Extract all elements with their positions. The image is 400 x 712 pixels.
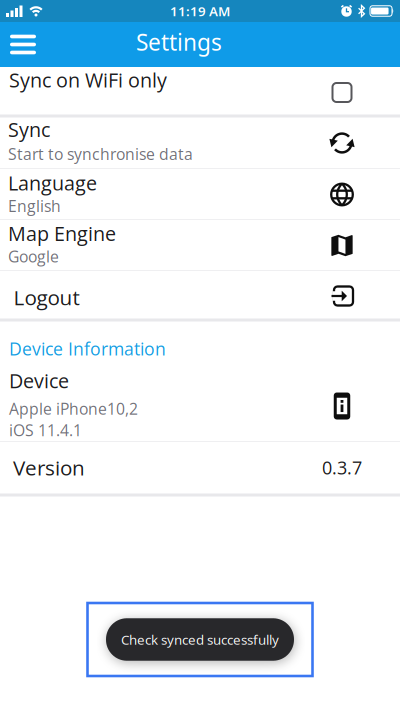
- staticText: Sync on WiFi only: [9, 66, 167, 93]
- button[interactable]: Language: [0, 169, 400, 219]
- staticText: Device Information: [9, 337, 166, 361]
- button[interactable]: Logout: [0, 271, 400, 318]
- staticText: Settings: [136, 27, 222, 57]
- staticText: Google: [8, 246, 59, 267]
- button[interactable]: Sync on WiFi only: [0, 67, 400, 114]
- staticText: English: [8, 195, 61, 217]
- staticText: Logout: [13, 283, 79, 311]
- staticText: iOS 11.4.1: [9, 419, 82, 441]
- staticText: Language: [8, 169, 97, 196]
- staticText: Apple iPhone10,2: [9, 398, 138, 419]
- staticText: Version: [13, 453, 85, 481]
- staticText: 11:19 AM: [170, 2, 230, 20]
- staticText: Device: [9, 367, 69, 394]
- staticText: 0.3.7: [322, 455, 362, 480]
- staticText: Start to synchronise data: [8, 143, 193, 164]
- button[interactable]: Map Engine: [0, 220, 400, 270]
- staticText: Map Engine: [8, 220, 116, 247]
- staticText: Sync: [8, 116, 50, 143]
- staticText: Check synced successfully: [121, 631, 279, 648]
- button[interactable]: Sync: [0, 118, 400, 168]
- button[interactable]: Menu: [0, 27, 36, 62]
